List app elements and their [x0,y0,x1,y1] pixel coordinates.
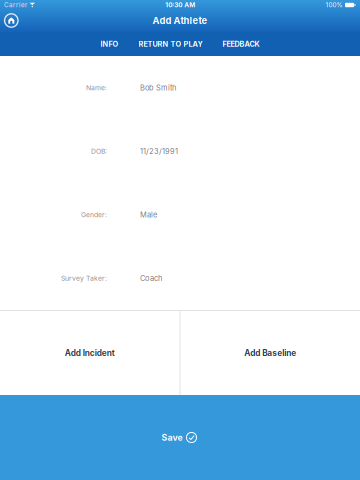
button[interactable]: Home [2,11,20,29]
staticText: Survey Taker: [61,274,107,282]
staticText: 11/23/1991 [140,147,178,156]
staticText: Name: [86,84,107,92]
button[interactable]: Add Incident [0,311,179,395]
staticText: Gender: [81,211,107,219]
staticText: INFO [100,40,118,48]
staticText: Add Baseline [244,348,296,358]
button[interactable]: FEEDBACK [212,32,269,56]
staticText: RETURN TO PLAY [138,40,202,48]
staticText: FEEDBACK [222,40,259,48]
staticText: Bob Smith [140,83,176,92]
button[interactable]: INFO [90,32,128,56]
staticText: 100% [325,1,342,9]
staticText: DOB: [91,147,107,155]
staticText: Add Athlete [152,15,207,26]
button[interactable]: Add Baseline [180,311,360,395]
staticText: Add Incident [65,348,115,358]
staticText: 10:30 AM [165,1,195,9]
staticText: Coach [140,274,162,283]
button[interactable]: Save [0,395,360,480]
staticText: Male [140,210,157,219]
staticText: Carrier [4,1,27,9]
button[interactable]: RETURN TO PLAY [128,32,212,56]
staticText: Save [161,432,182,443]
